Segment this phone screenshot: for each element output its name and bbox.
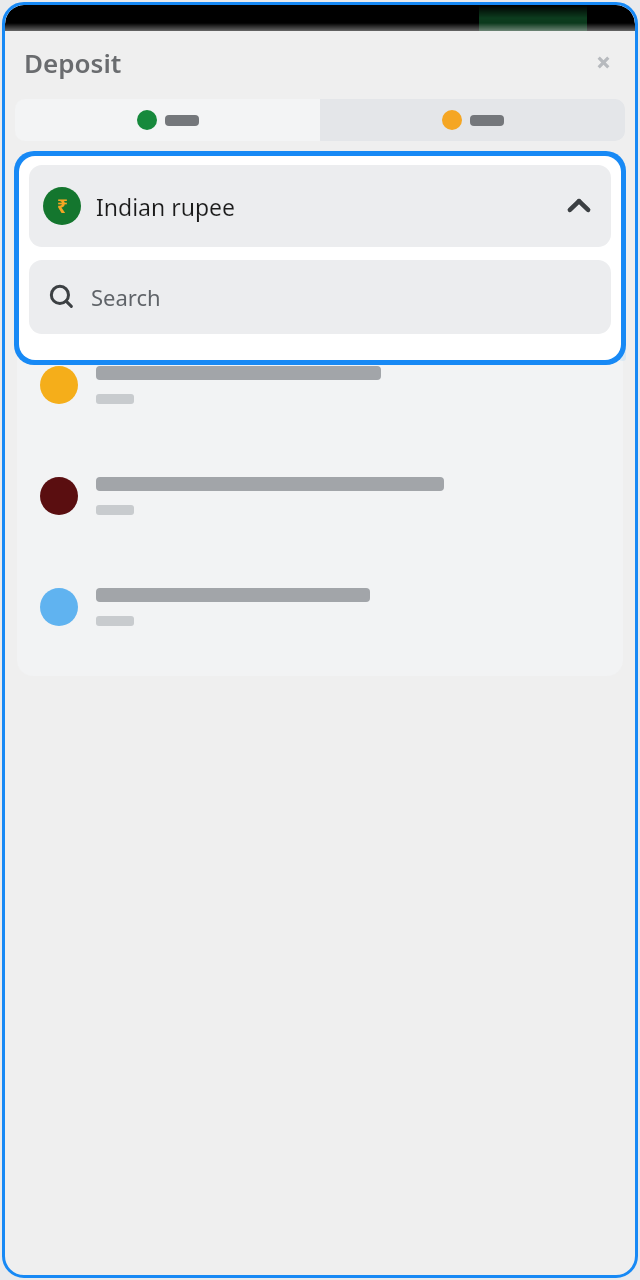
button[interactable] [320, 99, 625, 141]
button[interactable] [17, 329, 623, 440]
staticText: Deposit [24, 45, 122, 80]
button[interactable]: Close [584, 43, 622, 81]
button[interactable] [17, 551, 623, 662]
button[interactable]: ₹ [29, 165, 611, 247]
staticText: Search [91, 282, 161, 312]
other: Collapse [561, 188, 597, 224]
button[interactable] [17, 440, 623, 551]
button[interactable] [15, 99, 320, 141]
staticText: Indian rupee [96, 191, 561, 222]
button[interactable]: Search [29, 260, 611, 334]
staticText: ₹ [57, 193, 68, 219]
